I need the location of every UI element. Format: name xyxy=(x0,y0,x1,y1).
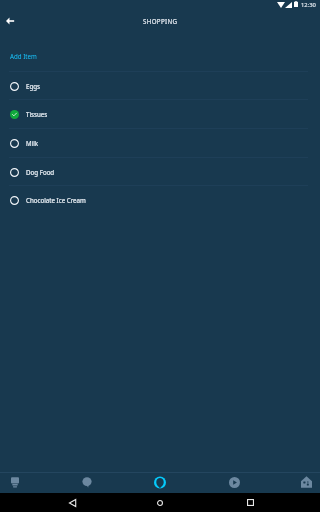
staticText: Eggs xyxy=(26,82,41,90)
button[interactable]: Dog Food xyxy=(0,158,320,186)
button[interactable]: Chat xyxy=(76,471,98,493)
staticText: Milk xyxy=(26,139,39,147)
button[interactable]: Recents xyxy=(240,493,260,512)
staticText: Tissues xyxy=(26,110,48,118)
button[interactable]: Tissues xyxy=(0,100,320,128)
button[interactable]: Eggs xyxy=(0,72,320,100)
button[interactable]: Lightbulb xyxy=(4,471,26,493)
staticText: Dog Food xyxy=(26,168,55,176)
button[interactable]: Chocolate Ice Cream xyxy=(0,186,320,214)
button[interactable]: Play xyxy=(223,471,245,493)
button[interactable]: Back xyxy=(2,13,18,29)
staticText: Add Item xyxy=(10,52,37,60)
button[interactable]: Home xyxy=(295,471,317,493)
button[interactable]: Assistant xyxy=(149,471,171,493)
button[interactable]: Add Item xyxy=(0,0,320,71)
button[interactable]: Milk xyxy=(0,129,320,157)
staticText: Chocolate Ice Cream xyxy=(26,196,86,204)
staticText: SHOPPING xyxy=(143,17,178,25)
staticText: 12:30 xyxy=(301,1,316,9)
button[interactable]: Home xyxy=(150,493,170,512)
button[interactable]: Back xyxy=(62,493,82,512)
